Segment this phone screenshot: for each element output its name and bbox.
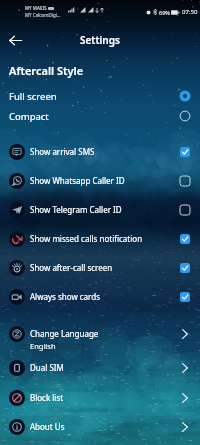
staticText: 69% (159, 9, 170, 16)
button[interactable]: Compact (0, 106, 200, 126)
staticText: Change Language (30, 328, 99, 339)
staticText: Settings (80, 33, 120, 47)
staticText: Show arrival SMS (30, 146, 95, 157)
staticText: Show Telegram Caller ID (30, 204, 122, 215)
staticText: Show missed calls notification (30, 233, 143, 244)
button[interactable]: About Us (0, 412, 200, 441)
staticText: Full screen (9, 90, 57, 103)
button[interactable]: Always show cards (0, 282, 200, 311)
button[interactable]: Show arrival SMS (0, 137, 200, 166)
button[interactable]: Full screen (0, 86, 200, 106)
button[interactable]: Show Telegram Caller ID (0, 195, 200, 224)
staticText: Dual SIM (30, 362, 64, 373)
staticText: Compact (9, 110, 49, 123)
button[interactable]: Show missed calls notification (0, 224, 200, 253)
staticText: MY MAXIS (25, 5, 47, 11)
button[interactable]: Show Whatsapp Caller ID (0, 166, 200, 195)
staticText: Block list (30, 392, 64, 403)
button[interactable]: Dual SIM (0, 353, 200, 382)
staticText: English (30, 341, 56, 351)
staticText: Aftercall Style (9, 63, 84, 78)
staticText: Show after-call screen (30, 262, 113, 273)
staticText: Show Whatsapp Caller ID (30, 175, 125, 186)
button[interactable]: Change Language (0, 319, 200, 348)
staticText: Always show cards (30, 291, 100, 302)
button[interactable]: Show after-call screen (0, 253, 200, 282)
staticText: MY CelcomDigi... (25, 12, 61, 18)
staticText: 07:50 (182, 8, 198, 16)
button[interactable]: Block list (0, 383, 200, 412)
staticText: About Us (30, 421, 65, 432)
button[interactable]: Back (5, 30, 25, 50)
